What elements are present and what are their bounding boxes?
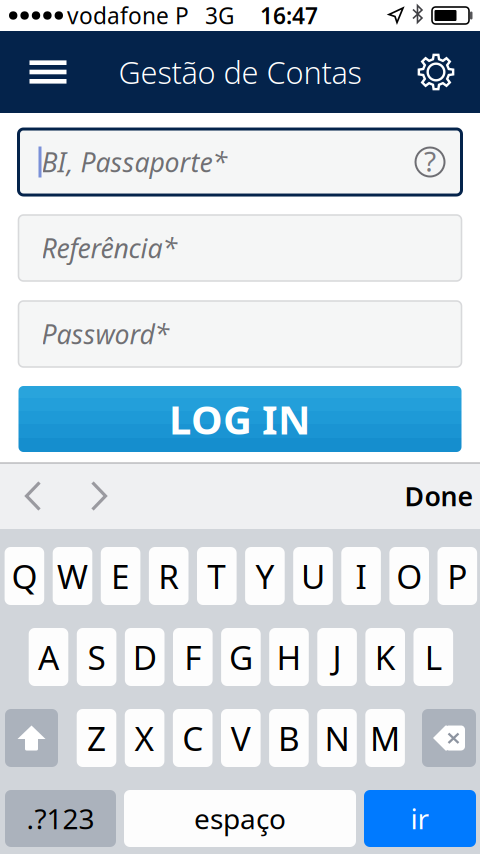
button[interactable]: U [293, 547, 333, 605]
button[interactable]: Next field [76, 471, 122, 521]
staticText: Y [255, 554, 274, 598]
staticText: E [111, 554, 130, 598]
button[interactable]: R [149, 547, 188, 605]
staticText: U [301, 554, 325, 598]
button[interactable]: Delete [422, 709, 476, 767]
staticText: Referência* [41, 230, 177, 266]
staticText: vodafone P [67, 0, 189, 30]
staticText: I [356, 554, 367, 598]
staticText: ? [424, 142, 436, 180]
button[interactable]: E [101, 547, 140, 605]
staticText: R [158, 554, 179, 598]
button[interactable]: BI, Passaporte* [18, 129, 461, 195]
staticText: B [278, 716, 300, 760]
staticText: S [88, 635, 106, 679]
button[interactable]: P [437, 547, 477, 605]
staticText: Password* [41, 316, 169, 352]
button[interactable]: Shift [5, 709, 58, 767]
button[interactable]: Q [5, 547, 44, 605]
staticText: Gestão de Contas [118, 52, 361, 92]
button[interactable]: G [221, 628, 261, 686]
staticText: K [375, 635, 396, 679]
button[interactable]: F [173, 628, 213, 686]
staticText: C [182, 716, 203, 760]
button[interactable]: T [197, 547, 237, 605]
button[interactable]: X [125, 709, 164, 767]
staticText: BI, Passaporte* [41, 144, 227, 180]
staticText: espaço [194, 800, 286, 837]
staticText: Done [404, 478, 473, 514]
staticText: G [229, 635, 253, 679]
staticText: J [333, 635, 342, 679]
staticText: H [276, 635, 301, 679]
staticText: N [324, 716, 349, 760]
button[interactable]: Previous field [10, 471, 56, 521]
staticText: X [135, 716, 155, 760]
button[interactable]: espaço [124, 790, 356, 847]
staticText: 16:47 [260, 0, 318, 30]
staticText: .?123 [26, 800, 94, 837]
staticText: T [207, 554, 226, 598]
button[interactable]: L [413, 628, 453, 686]
button[interactable]: V [221, 709, 261, 767]
staticText: P [447, 554, 467, 598]
button[interactable]: D [125, 628, 164, 686]
button[interactable]: ir [364, 790, 476, 847]
staticText: Q [11, 554, 37, 598]
button[interactable]: A [29, 628, 68, 686]
button[interactable]: H [269, 628, 309, 686]
staticText: D [133, 635, 157, 679]
button[interactable]: Z [77, 709, 116, 767]
button[interactable]: Y [245, 547, 285, 605]
staticText: F [184, 635, 201, 679]
button[interactable]: W [53, 547, 92, 605]
staticText: Z [87, 716, 106, 760]
button[interactable]: C [173, 709, 212, 767]
button[interactable]: M [365, 709, 405, 767]
button[interactable]: .?123 [5, 790, 116, 847]
button[interactable]: I [341, 547, 381, 605]
button[interactable]: Settings [408, 44, 464, 100]
button[interactable]: Menu [17, 44, 79, 100]
staticText: 3G [205, 0, 235, 30]
button[interactable]: LOG IN [18, 386, 461, 452]
button[interactable]: Referência* [18, 215, 461, 281]
staticText: O [396, 554, 422, 598]
button[interactable]: S [77, 628, 116, 686]
staticText: ir [410, 800, 429, 837]
button[interactable]: O [389, 547, 429, 605]
staticText: L [425, 635, 442, 679]
button[interactable]: K [365, 628, 405, 686]
staticText: LOG IN [169, 392, 311, 445]
button[interactable]: N [317, 709, 357, 767]
button[interactable]: J [317, 628, 357, 686]
button[interactable]: Done [396, 471, 480, 521]
staticText: M [370, 716, 400, 760]
button[interactable]: Password* [18, 301, 461, 367]
staticText: W [57, 554, 88, 598]
staticText: A [38, 635, 59, 679]
staticText: V [231, 716, 251, 760]
button[interactable]: B [269, 709, 309, 767]
